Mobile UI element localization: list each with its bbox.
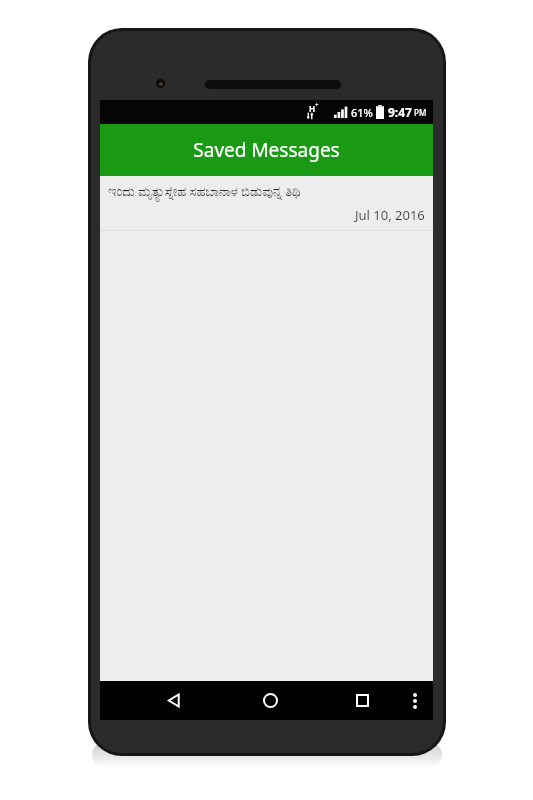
staticText: 9:47 <box>388 104 412 120</box>
button[interactable]: More options <box>400 681 430 720</box>
staticText: + <box>315 101 319 109</box>
button[interactable]: Home <box>248 681 292 720</box>
staticText: H <box>309 103 316 114</box>
staticText: PM <box>414 107 427 118</box>
staticText: 61% <box>351 105 373 120</box>
staticText: Saved Messages <box>193 137 340 163</box>
staticText: Jul 10, 2016 <box>355 206 425 224</box>
staticText: ಇಂದು ಮೃತ್ಯುಸ್ನೇಹ ಸಹಬಾನಾಳ ಬಿಡುವುನ್ನ ತಿಥಿ <box>108 182 301 200</box>
button[interactable]: ಇಂದು ಮೃತ್ಯುಸ್ನೇಹ ಸಹಬಾನಾಳ ಬಿಡುವುನ್ನ ತಿಥಿ <box>100 176 433 230</box>
button[interactable]: Recent apps <box>340 681 384 720</box>
button[interactable]: Back <box>152 681 196 720</box>
